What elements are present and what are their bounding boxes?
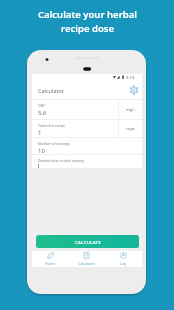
staticText: 5.6 [38, 109, 47, 117]
staticText: Calculate your herbal [38, 8, 137, 21]
staticText: 10 [38, 147, 45, 154]
staticText: Number of servings [38, 141, 70, 146]
button[interactable]: Desired dose in each serving [32, 155, 142, 168]
staticText: 3:10 [126, 75, 135, 81]
staticText: Total oil in recipe [38, 123, 65, 128]
staticText: CALCULATE [75, 239, 101, 245]
button[interactable]: Log [105, 251, 142, 267]
staticText: cups [126, 126, 135, 131]
button[interactable]: mg/.. [119, 100, 142, 119]
button[interactable]: Home [32, 251, 68, 267]
button[interactable]: Total oil in recipe [32, 120, 118, 137]
button[interactable]: Calculator [68, 251, 105, 267]
button[interactable]: cups [119, 120, 142, 137]
staticText: Desired dose in each serving [38, 158, 84, 163]
staticText: Log [120, 261, 127, 266]
staticText: 1 [38, 129, 42, 137]
button[interactable]: OBV [32, 100, 118, 119]
staticText: Calculator [78, 261, 96, 266]
button[interactable]: Settings [128, 83, 139, 97]
staticText: mg/.. [126, 107, 136, 112]
staticText: Home [45, 261, 56, 266]
button[interactable]: Number of servings [32, 138, 142, 154]
staticText: recipe dose [61, 22, 114, 35]
staticText: OBV [38, 103, 45, 108]
button[interactable]: CALCULATE [36, 235, 139, 248]
staticText: Calculator [38, 87, 65, 94]
